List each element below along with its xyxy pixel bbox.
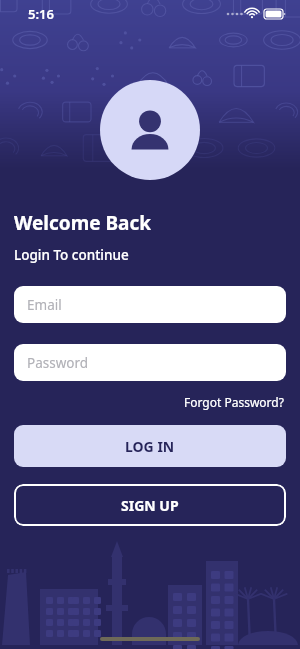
button[interactable]: LOG IN bbox=[14, 425, 286, 467]
button[interactable]: SIGN UP bbox=[14, 484, 286, 526]
staticText: LOG IN bbox=[125, 437, 175, 456]
staticText: Welcome Back bbox=[14, 210, 152, 236]
staticText: SIGN UP bbox=[121, 496, 179, 515]
staticText: Email bbox=[27, 296, 62, 314]
staticText: Forgot Password? bbox=[184, 394, 284, 410]
staticText: Login To continue bbox=[14, 246, 129, 264]
button[interactable]: Password bbox=[14, 344, 286, 381]
staticText: Password bbox=[27, 354, 89, 372]
button[interactable]: Email bbox=[14, 286, 286, 323]
button[interactable]: Profile avatar bbox=[100, 80, 200, 180]
staticText: 5:16 bbox=[28, 5, 54, 23]
button[interactable]: Forgot Password? bbox=[182, 392, 286, 412]
